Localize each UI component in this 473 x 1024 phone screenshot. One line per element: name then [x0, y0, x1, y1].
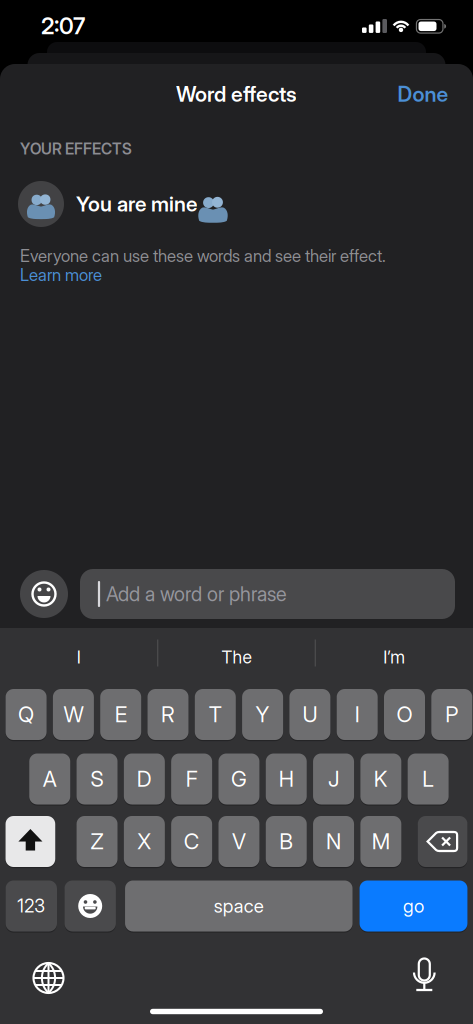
button[interactable]: Next keyboard: [32, 962, 64, 994]
staticText: T: [209, 701, 222, 727]
button[interactable]: A: [29, 753, 70, 804]
button[interactable]: U: [289, 689, 330, 740]
staticText: C: [184, 828, 200, 854]
button[interactable]: I: [4, 635, 154, 679]
button[interactable]: go: [360, 880, 467, 931]
staticText: go: [403, 895, 424, 917]
staticText: 2:07: [41, 12, 85, 40]
button[interactable]: I’m: [319, 635, 469, 679]
button[interactable]: V: [218, 816, 259, 867]
staticText: YOUR EFFECTS: [20, 140, 132, 158]
button[interactable]: M: [360, 816, 401, 867]
button[interactable]: Learn more: [20, 265, 453, 285]
button[interactable]: Emoji: [20, 570, 68, 618]
button[interactable]: E: [100, 689, 141, 740]
staticText: K: [374, 766, 388, 792]
staticText: M: [372, 828, 390, 854]
staticText: I: [77, 646, 81, 668]
button[interactable]: 123: [6, 880, 57, 931]
staticText: I’m: [383, 646, 405, 668]
button[interactable]: K: [360, 753, 401, 804]
staticText: H: [279, 766, 294, 792]
staticText: F: [186, 766, 198, 792]
button[interactable]: Dictate: [407, 958, 441, 992]
button[interactable]: P: [431, 689, 472, 740]
button[interactable]: Delete: [418, 816, 467, 867]
staticText: G: [231, 766, 247, 792]
staticText: X: [137, 828, 151, 854]
staticText: 123: [17, 895, 45, 917]
button[interactable]: G: [218, 753, 259, 804]
button[interactable]: C: [171, 816, 212, 867]
staticText: V: [232, 828, 246, 854]
staticText: Q: [18, 701, 34, 727]
button[interactable]: space: [125, 880, 353, 931]
button[interactable]: You are mine: [18, 179, 455, 229]
staticText: The: [221, 646, 251, 668]
staticText: D: [137, 766, 152, 792]
button[interactable]: I: [337, 689, 378, 740]
button[interactable]: F: [171, 753, 212, 804]
button[interactable]: Q: [6, 689, 47, 740]
staticText: Word effects: [176, 81, 297, 107]
staticText: N: [326, 828, 341, 854]
staticText: Learn more: [20, 265, 102, 285]
staticText: B: [279, 828, 293, 854]
staticText: space: [214, 895, 264, 917]
button[interactable]: J: [313, 753, 354, 804]
staticText: Add a word or phrase: [106, 582, 287, 606]
button[interactable]: Y: [242, 689, 283, 740]
button[interactable]: Add a word or phrase: [80, 569, 455, 619]
button[interactable]: B: [266, 816, 307, 867]
button[interactable]: X: [124, 816, 165, 867]
button[interactable]: W: [53, 689, 94, 740]
staticText: O: [396, 701, 412, 727]
staticText: R: [161, 701, 175, 727]
staticText: L: [422, 766, 434, 792]
staticText: U: [302, 701, 317, 727]
staticText: W: [63, 701, 83, 727]
staticText: P: [445, 701, 458, 727]
staticText: Z: [90, 828, 103, 854]
staticText: J: [328, 766, 339, 792]
button[interactable]: R: [147, 689, 188, 740]
button[interactable]: D: [124, 753, 165, 804]
staticText: Done: [397, 81, 448, 107]
button[interactable]: Shift: [5, 816, 55, 867]
button[interactable]: Emoji: [64, 880, 116, 931]
button[interactable]: Done: [397, 81, 448, 107]
button[interactable]: H: [266, 753, 307, 804]
button[interactable]: O: [384, 689, 425, 740]
staticText: Everyone can use these words and see the…: [20, 246, 386, 266]
button[interactable]: T: [195, 689, 236, 740]
button[interactable]: The: [161, 635, 311, 679]
staticText: I: [355, 701, 360, 727]
staticText: E: [115, 701, 127, 727]
staticText: You are mine: [76, 191, 197, 216]
staticText: Y: [256, 701, 270, 727]
button[interactable]: Z: [76, 816, 117, 867]
staticText: S: [90, 766, 103, 792]
button[interactable]: L: [408, 753, 449, 804]
staticText: A: [43, 766, 57, 792]
button[interactable]: S: [76, 753, 117, 804]
button[interactable]: N: [313, 816, 354, 867]
